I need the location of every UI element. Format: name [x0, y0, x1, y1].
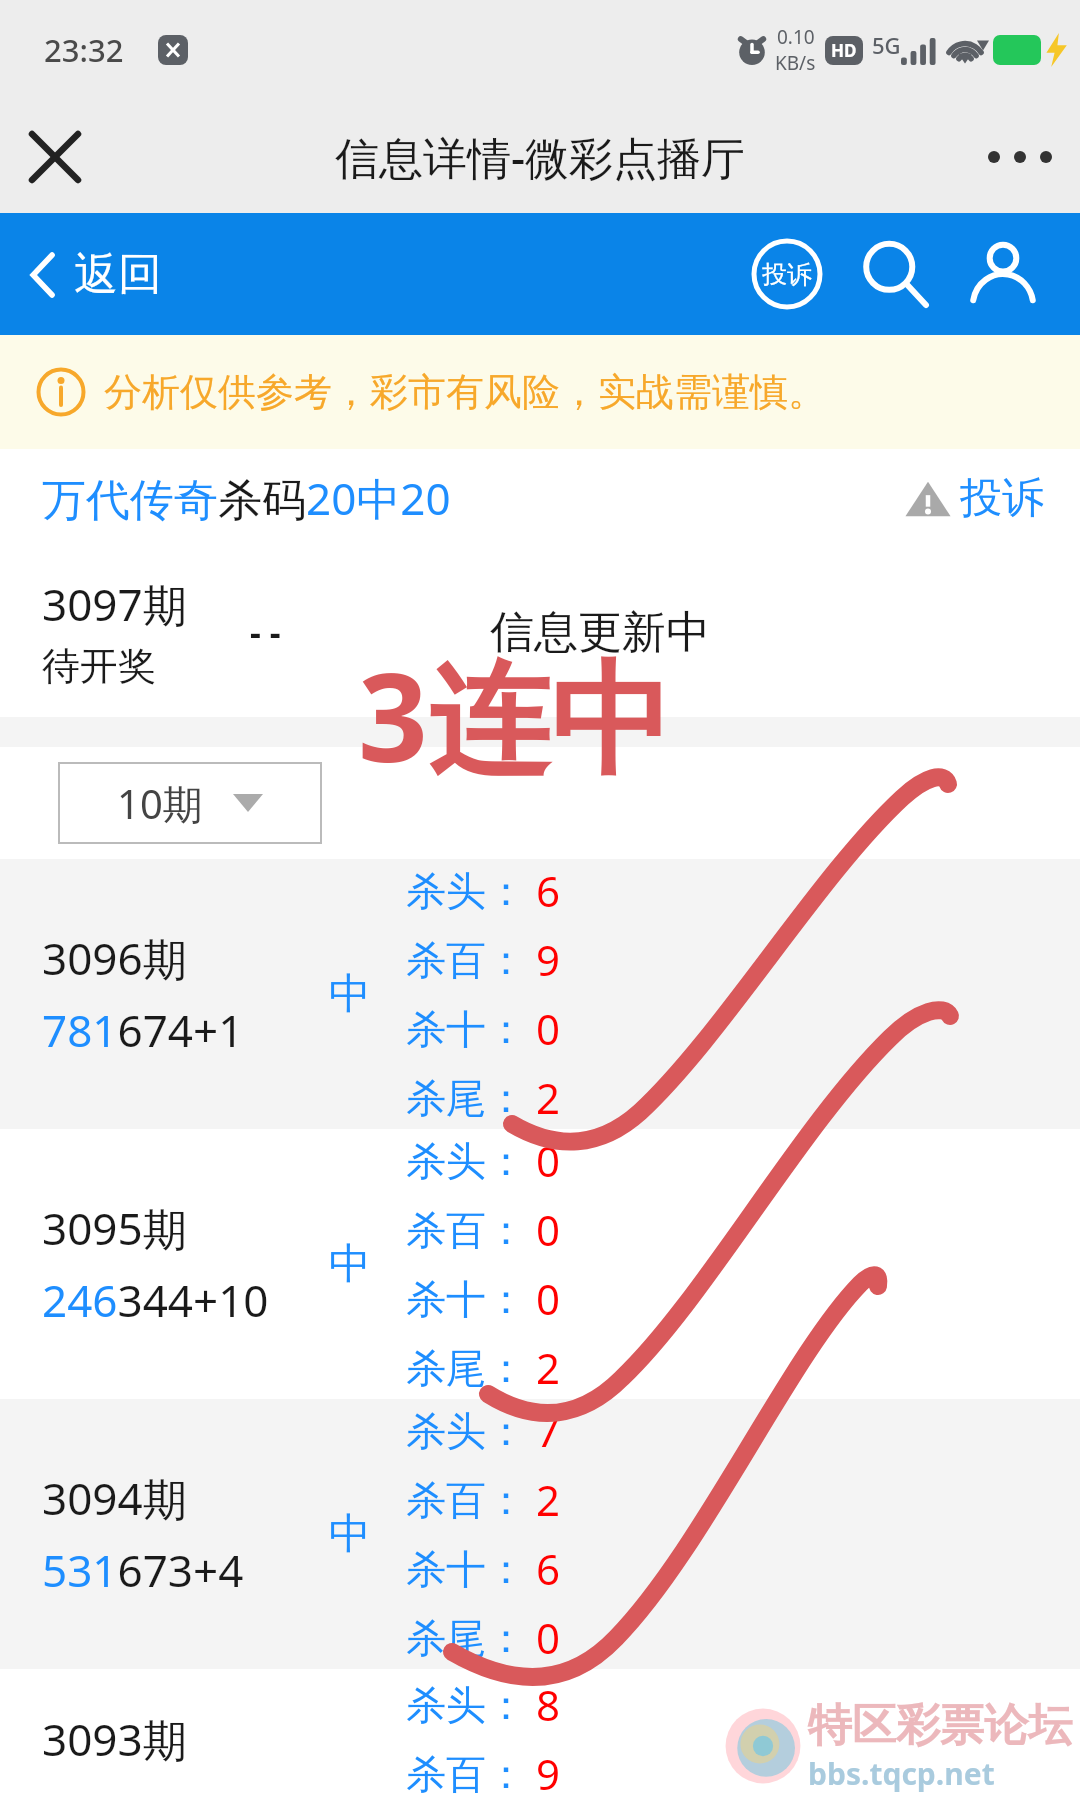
staticText: ：	[486, 1136, 526, 1186]
staticText: 2	[536, 1069, 561, 1126]
staticText: ：	[486, 1613, 526, 1663]
staticText: ：	[486, 1004, 526, 1054]
staticText: ：	[486, 1406, 526, 1456]
staticText: 2	[536, 1471, 561, 1528]
staticText: 6	[536, 862, 561, 919]
button[interactable]: More options	[960, 100, 1080, 213]
staticText: 杀头	[406, 866, 486, 916]
staticText: ：	[486, 866, 526, 916]
staticText: 中	[329, 968, 371, 1021]
staticText: 杀百	[406, 1205, 486, 1255]
staticText: 杀尾	[406, 1073, 486, 1123]
staticText: 10期	[117, 776, 203, 831]
staticText: 杀十	[406, 1544, 486, 1594]
staticText: 信息更新中	[490, 605, 710, 660]
staticText: 中	[329, 1238, 371, 1291]
staticText: 杀头	[406, 1680, 486, 1730]
staticText: 杀十	[406, 1004, 486, 1054]
staticText: 3094期	[42, 1468, 187, 1528]
staticText: 杀百	[406, 1475, 486, 1525]
staticText: 246344+10	[42, 1270, 269, 1330]
staticText: 9	[536, 1745, 561, 1802]
staticText: ：	[486, 1274, 526, 1324]
staticText: 信息详情-微彩点播厅	[335, 127, 746, 187]
staticText: 特区彩票论坛	[808, 1698, 1072, 1753]
staticText: 0	[536, 1270, 561, 1327]
button[interactable]: 万代传奇杀码20中20	[42, 468, 451, 528]
staticText: 杀尾	[406, 1613, 486, 1663]
staticText: ：	[486, 1475, 526, 1525]
staticText: 2	[536, 1339, 561, 1396]
button[interactable]: Close	[0, 100, 110, 213]
staticText: 3097期	[42, 574, 187, 634]
staticText: 杀十	[406, 1274, 486, 1324]
staticText: 7	[536, 1402, 561, 1459]
button[interactable]: Search	[852, 231, 938, 317]
staticText: HD	[831, 39, 857, 62]
staticText: 8	[536, 1676, 561, 1733]
staticText: ：	[486, 1749, 526, 1799]
button[interactable]: 3094期	[0, 1399, 1080, 1669]
staticText: ：	[486, 935, 526, 985]
staticText: 531673+4	[42, 1540, 244, 1600]
button[interactable]: 投诉	[744, 231, 830, 317]
staticText: 0	[536, 1132, 561, 1189]
button[interactable]: 3093期	[0, 1669, 1080, 1808]
staticText: 分析仅供参考，彩市有风险，实战需谨慎。	[104, 368, 826, 416]
staticText: 杀百	[406, 1749, 486, 1799]
staticText: 杀头	[406, 1406, 486, 1456]
staticText: 中	[329, 1508, 371, 1561]
staticText: bbs.tqcp.net	[808, 1753, 995, 1794]
staticText: 3096期	[42, 928, 187, 988]
button[interactable]: 投诉	[904, 472, 1044, 525]
staticText: 杀百	[406, 935, 486, 985]
staticText: 6	[536, 1540, 561, 1597]
staticText: 0	[536, 1201, 561, 1258]
staticText: 3连中	[358, 632, 672, 799]
staticText: 9	[536, 931, 561, 988]
staticText: 0	[536, 1609, 561, 1666]
staticText: ：	[486, 1680, 526, 1730]
button[interactable]: 3096期	[0, 859, 1080, 1129]
staticText: KB/s	[775, 50, 816, 76]
staticText: 3095期	[42, 1198, 187, 1258]
staticText: ：	[486, 1544, 526, 1594]
staticText: 3093期	[42, 1709, 300, 1769]
button[interactable]: 3095期	[0, 1129, 1080, 1399]
staticText: 23:32	[44, 29, 124, 71]
staticText: ：	[486, 1343, 526, 1393]
staticText: 杀头	[406, 1136, 486, 1186]
staticText: 杀尾	[406, 1343, 486, 1393]
staticText: 待开奖	[42, 642, 156, 690]
staticText: - -	[250, 609, 281, 655]
button[interactable]: Account	[960, 231, 1046, 317]
staticText: 返回	[74, 247, 162, 302]
staticText: 0.10	[777, 24, 815, 50]
staticText: ：	[486, 1205, 526, 1255]
button[interactable]: 10期	[58, 762, 322, 844]
staticText: 投诉	[960, 472, 1044, 525]
staticText: ：	[486, 1073, 526, 1123]
button[interactable]: 返回	[30, 247, 162, 302]
staticText: 投诉	[762, 259, 812, 290]
staticText: 781674+1	[42, 1000, 244, 1060]
staticText: 0	[536, 1000, 561, 1057]
staticText: 5G	[872, 30, 901, 60]
